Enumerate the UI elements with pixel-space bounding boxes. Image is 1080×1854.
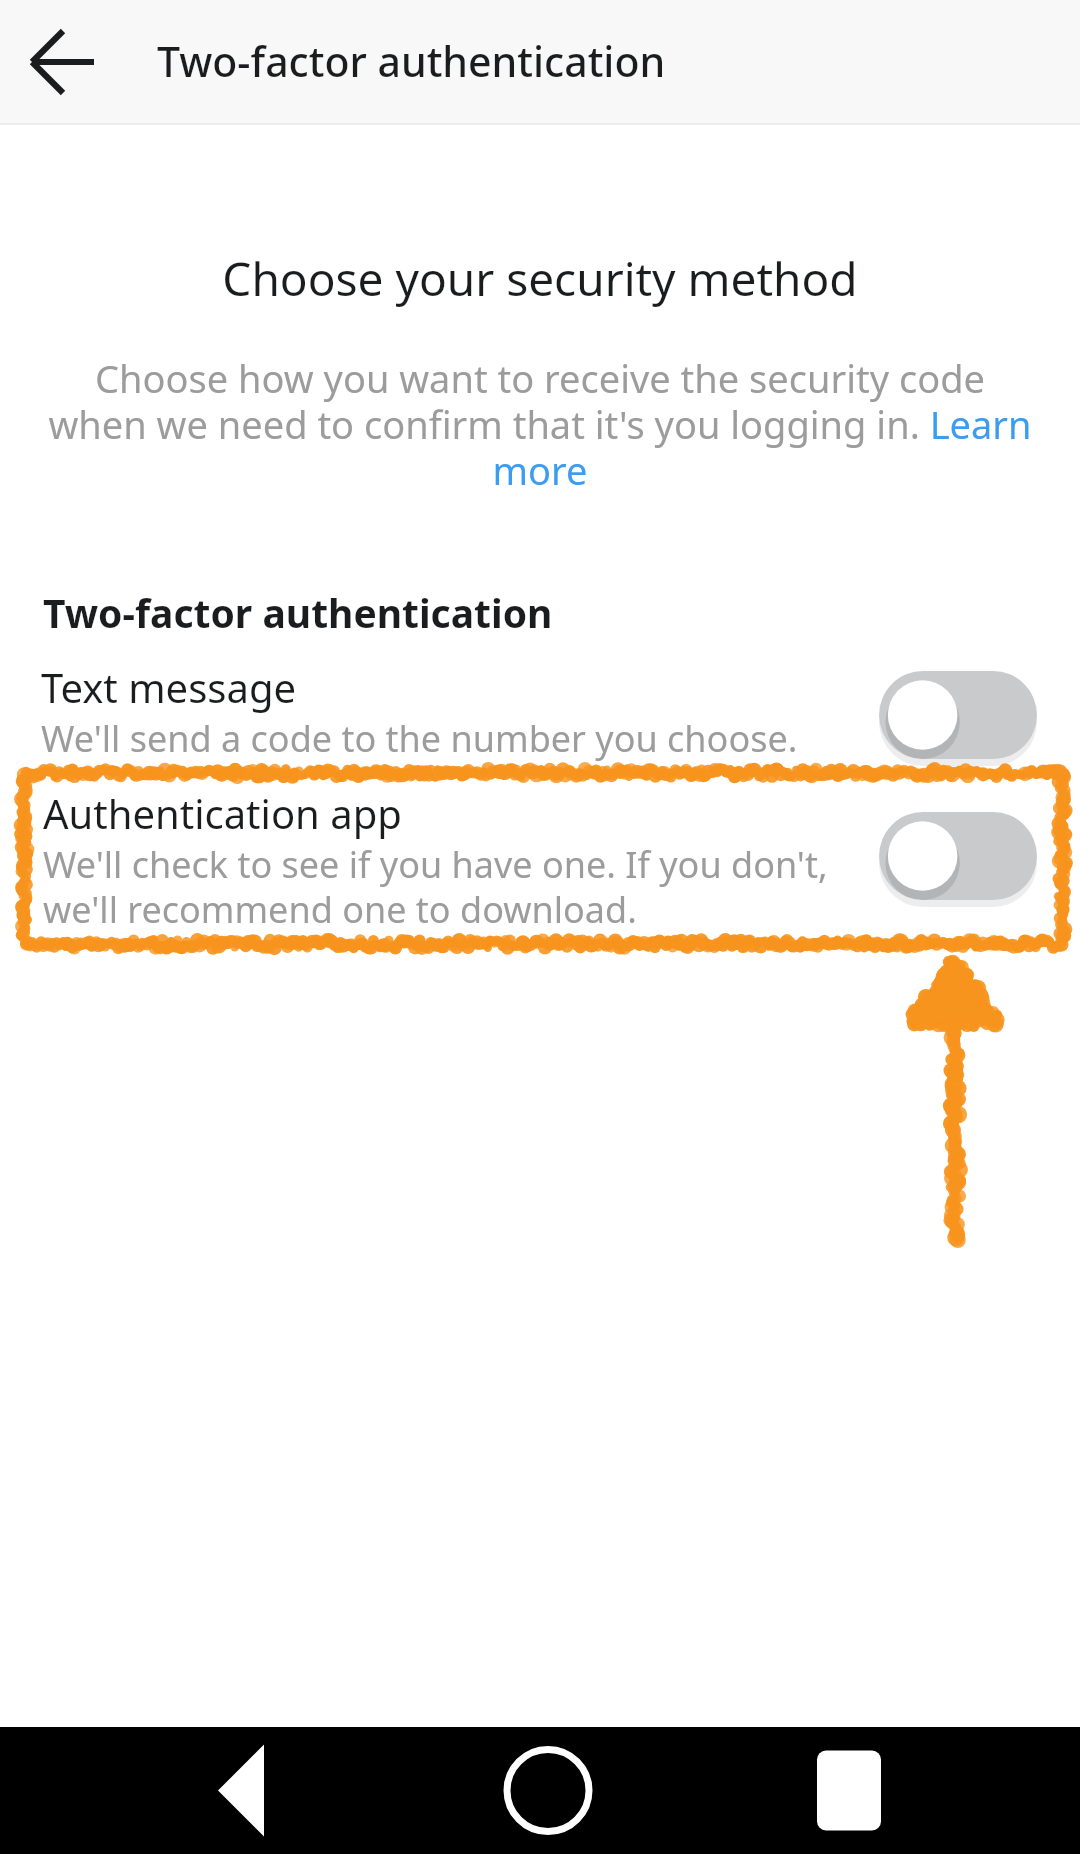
button[interactable]: Choose how you want to receive the secur… (46, 352, 1034, 496)
staticText: Text message (41, 660, 297, 714)
staticText: We'll send a code to the number you choo… (41, 714, 798, 763)
staticText: We'll check to see if you have one. If y… (43, 840, 828, 933)
staticText: Two-factor authentication (157, 33, 666, 89)
button[interactable]: Text message (0, 654, 1080, 772)
staticText: Two-factor authentication (43, 586, 553, 639)
staticText: Authentication app (43, 786, 402, 840)
button[interactable]: Back (6, 6, 118, 118)
button[interactable]: Recent apps (788, 1727, 910, 1854)
button[interactable]: Home (487, 1727, 609, 1854)
button[interactable]: Back (180, 1727, 302, 1854)
button[interactable]: Toggle, off (872, 664, 1044, 766)
button[interactable]: Authentication app (0, 772, 1080, 944)
button[interactable]: Toggle, off (872, 805, 1044, 907)
staticText: Choose your security method (0, 247, 1080, 310)
